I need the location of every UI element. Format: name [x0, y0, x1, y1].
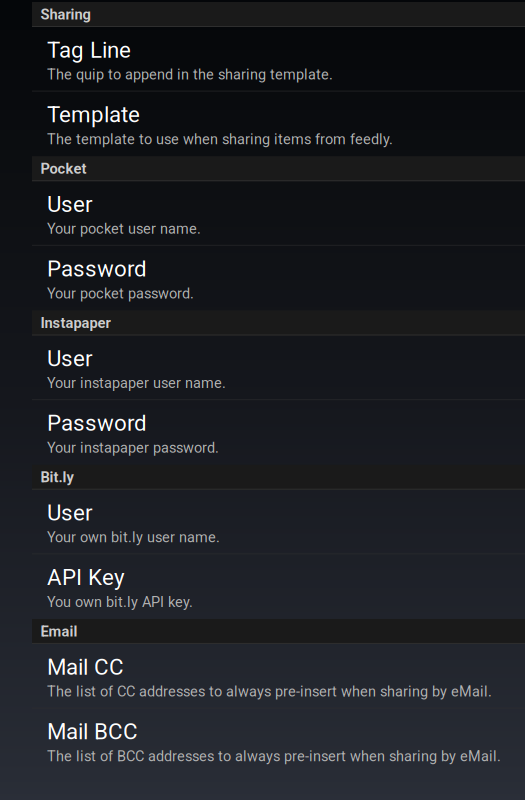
staticText: Your pocket user name.	[47, 220, 201, 237]
button[interactable]: Password	[0, 400, 525, 465]
staticText: Email	[40, 623, 77, 640]
staticText: You own bit.ly API key.	[47, 593, 193, 610]
button[interactable]: Mail CC	[0, 644, 525, 709]
button[interactable]: API Key	[0, 554, 525, 619]
staticText: Your instapaper user name.	[47, 375, 226, 392]
button[interactable]: User	[0, 335, 525, 400]
staticText: The list of CC addresses to always pre-i…	[47, 683, 492, 700]
button[interactable]: Password	[0, 246, 525, 310]
staticText: Instapaper	[40, 314, 110, 332]
button[interactable]: Template	[0, 92, 525, 156]
staticText: Sharing	[40, 6, 90, 23]
staticText: Mail CC	[47, 654, 124, 680]
button[interactable]: User	[0, 181, 525, 246]
staticText: Template	[47, 102, 140, 128]
staticText: User	[47, 500, 93, 526]
staticText: Your instapaper password.	[47, 439, 219, 456]
staticText: API Key	[47, 564, 125, 590]
staticText: Password	[47, 256, 147, 282]
staticText: The quip to append in the sharing templa…	[47, 66, 333, 83]
staticText: User	[47, 191, 93, 217]
staticText: Mail BCC	[47, 719, 138, 745]
button[interactable]: User	[0, 490, 525, 554]
staticText: Bit.ly	[40, 469, 73, 486]
button[interactable]: Tag Line	[0, 27, 525, 92]
staticText: The template to use when sharing items f…	[47, 131, 393, 148]
button[interactable]: Mail BCC	[0, 709, 525, 773]
staticText: Your pocket password.	[47, 285, 194, 302]
staticText: Tag Line	[47, 37, 131, 63]
staticText: User	[47, 345, 93, 372]
staticText: Pocket	[40, 160, 86, 177]
staticText: The list of BCC addresses to always pre-…	[47, 748, 501, 765]
staticText: Password	[47, 410, 147, 436]
staticText: Your own bit.ly user name.	[47, 529, 220, 546]
